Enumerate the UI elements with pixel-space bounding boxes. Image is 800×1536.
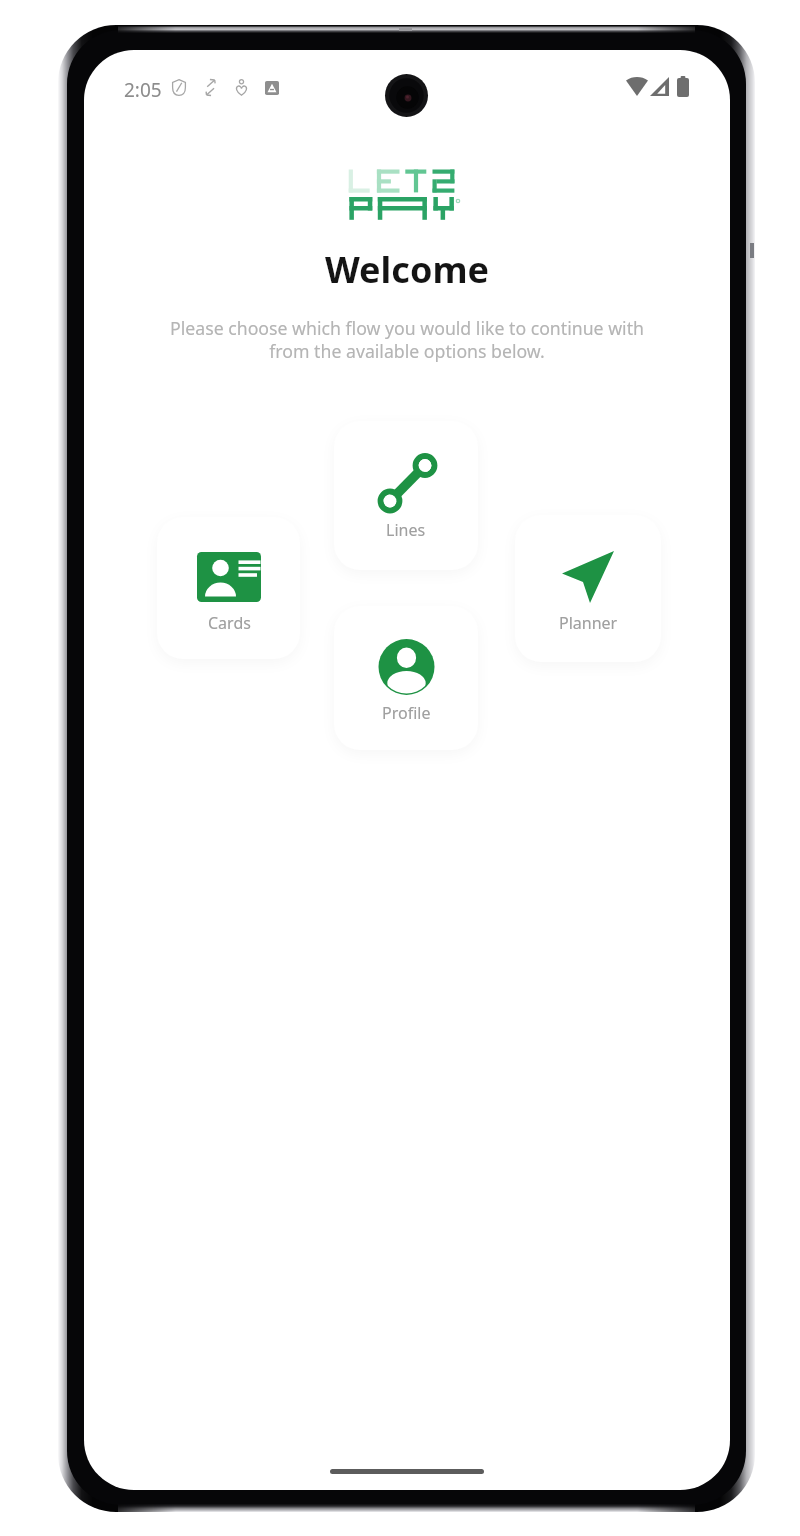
- staticText: Welcome: [325, 245, 489, 294]
- staticText: Cards: [208, 612, 251, 634]
- button[interactable]: Cards: [157, 517, 300, 659]
- staticText: Please choose which flow you would like …: [170, 316, 644, 363]
- button[interactable]: Profile: [334, 606, 478, 750]
- button[interactable]: Lines: [334, 421, 478, 570]
- staticText: Planner: [559, 612, 618, 634]
- staticText: 2:05: [124, 77, 162, 103]
- staticText: Profile: [382, 702, 431, 724]
- button[interactable]: Planner: [515, 515, 661, 662]
- staticText: Lines: [386, 519, 426, 541]
